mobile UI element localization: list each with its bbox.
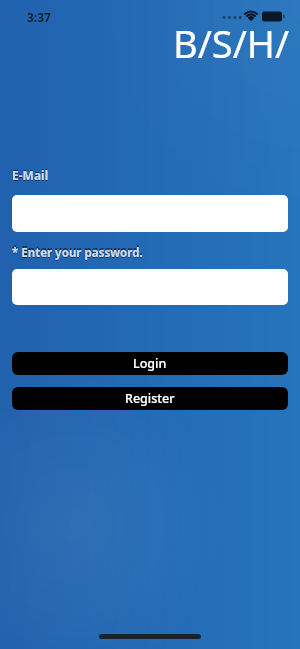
- staticText: E-Mail: [12, 167, 49, 183]
- staticText: Register: [125, 390, 175, 407]
- staticText: * Enter your password.: [12, 245, 143, 261]
- staticText: Login: [133, 355, 167, 372]
- button[interactable]: Register: [12, 387, 288, 410]
- staticText: 3:37: [27, 9, 51, 25]
- staticText: * Enter your password.: [12, 243, 143, 259]
- staticText: E-Mail: [12, 166, 49, 182]
- staticText: * Enter your password.: [12, 246, 143, 262]
- staticText: E-Mail: [12, 168, 49, 184]
- button[interactable]: [12, 195, 288, 232]
- button[interactable]: [12, 269, 288, 305]
- staticText: B/S/H/: [173, 17, 290, 69]
- button[interactable]: Login: [12, 352, 288, 375]
